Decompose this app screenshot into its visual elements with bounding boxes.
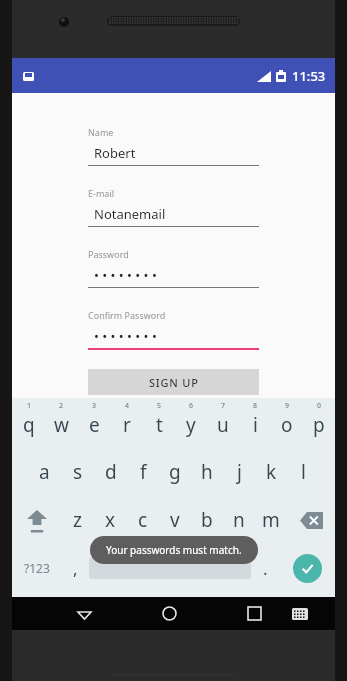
staticText: d	[105, 459, 117, 485]
button[interactable]: l	[287, 448, 319, 496]
staticText: ?123	[24, 560, 50, 576]
button[interactable]: s	[61, 448, 94, 496]
staticText: p	[313, 412, 325, 438]
staticText: 3	[92, 401, 97, 411]
staticText: b	[201, 507, 213, 533]
button[interactable]: .	[251, 544, 279, 592]
button[interactable]: Shift	[12, 496, 61, 544]
button[interactable]: 1	[12, 401, 45, 448]
button[interactable]: ,	[61, 544, 89, 592]
staticText: s	[73, 459, 83, 485]
staticText: k	[266, 459, 277, 485]
staticText: i	[253, 412, 258, 438]
button[interactable]: h	[191, 448, 223, 496]
staticText: g	[169, 459, 181, 485]
staticText: Password	[88, 248, 129, 260]
button[interactable]: g	[159, 448, 191, 496]
staticText: u	[217, 412, 229, 438]
button[interactable]: j	[223, 448, 255, 496]
staticText: v	[170, 507, 180, 533]
button[interactable]: Done	[279, 544, 335, 592]
staticText: Robert	[94, 144, 136, 162]
button[interactable]: 2	[45, 401, 78, 448]
staticText: o	[281, 412, 293, 438]
button[interactable]: 8	[239, 401, 271, 448]
staticText: • • • • • • • •	[94, 266, 157, 284]
staticText: t	[156, 412, 163, 438]
staticText: 0	[317, 401, 322, 411]
button[interactable]: z	[61, 496, 94, 544]
staticText: 6	[189, 401, 194, 411]
staticText: n	[233, 507, 245, 533]
button[interactable]: SIGN UP	[88, 369, 259, 395]
button[interactable]: Switch keyboard	[277, 597, 322, 630]
staticText: 4	[125, 401, 130, 411]
staticText: h	[201, 459, 213, 485]
button[interactable]: n	[223, 496, 255, 544]
button[interactable]: b	[191, 496, 223, 544]
staticText: c	[138, 507, 148, 533]
button[interactable]: Recents	[232, 597, 277, 630]
staticText: y	[186, 412, 196, 438]
staticText: 9	[285, 401, 290, 411]
button[interactable]: 4	[111, 401, 143, 448]
staticText: ,	[73, 557, 78, 580]
button[interactable]: 5	[143, 401, 175, 448]
staticText: 1	[27, 401, 32, 411]
button[interactable]: a	[28, 448, 61, 496]
button[interactable]: Space	[89, 557, 251, 579]
button[interactable]: k	[255, 448, 287, 496]
staticText: m	[262, 507, 280, 533]
button[interactable]: Back	[62, 597, 107, 630]
staticText: e	[89, 412, 100, 438]
button[interactable]: d	[94, 448, 127, 496]
staticText: Notanemail	[94, 205, 166, 223]
staticText: a	[39, 459, 50, 485]
staticText: 5	[157, 401, 162, 411]
staticText: w	[54, 412, 69, 438]
staticText: 7	[221, 401, 226, 411]
staticText: Confirm Password	[88, 309, 166, 321]
staticText: SIGN UP	[149, 375, 199, 390]
staticText: E-mail	[88, 187, 115, 199]
staticText: 8	[253, 401, 258, 411]
staticText: r	[123, 412, 131, 438]
button[interactable]: 3	[78, 401, 111, 448]
button[interactable]: ?123	[12, 544, 61, 592]
staticText: x	[105, 507, 116, 533]
button[interactable]: c	[127, 496, 159, 544]
button[interactable]: x	[94, 496, 127, 544]
staticText: j	[237, 459, 242, 485]
button[interactable]: 0	[303, 401, 335, 448]
button[interactable]: 7	[207, 401, 239, 448]
staticText: • • • • • • • •	[94, 327, 157, 345]
staticText: l	[301, 459, 306, 485]
staticText: 2	[59, 401, 64, 411]
button[interactable]: v	[159, 496, 191, 544]
staticText: f	[140, 459, 147, 485]
button[interactable]: m	[255, 496, 287, 544]
button[interactable]: 9	[271, 401, 303, 448]
staticText: Your passwords must match.	[106, 543, 242, 557]
button[interactable]: 6	[175, 401, 207, 448]
staticText: z	[73, 507, 82, 533]
button[interactable]: f	[127, 448, 159, 496]
staticText: Name	[88, 126, 114, 138]
button[interactable]: Home	[147, 597, 192, 630]
button[interactable]: Delete	[287, 496, 335, 544]
staticText: q	[23, 412, 35, 438]
staticText: 11:53	[292, 67, 326, 85]
staticText: .	[263, 557, 268, 580]
